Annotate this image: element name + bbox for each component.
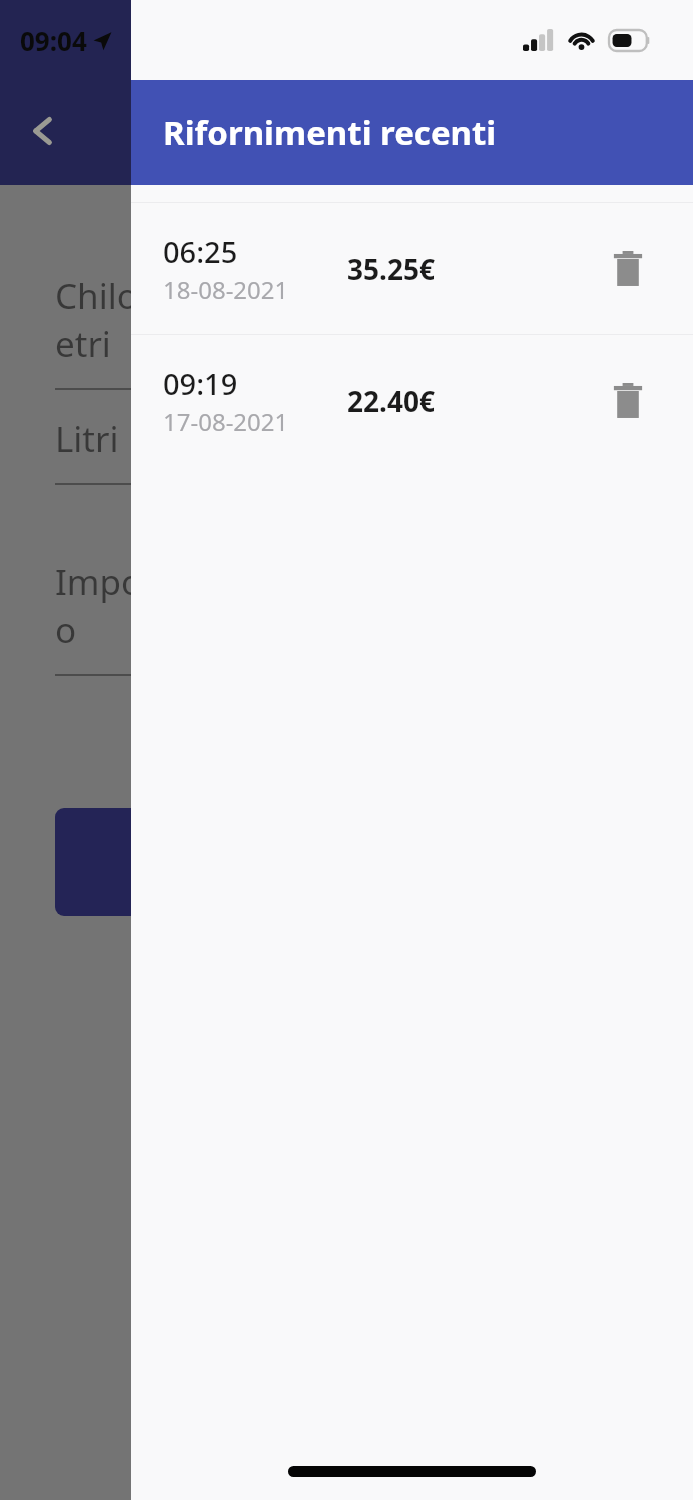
button[interactable]: Delete xyxy=(599,372,657,430)
button[interactable]: Back xyxy=(16,104,70,158)
staticText: 09:19 xyxy=(163,364,238,403)
button[interactable]: 09:19 xyxy=(131,335,693,466)
button[interactable]: Delete xyxy=(599,240,657,298)
staticText: 35.25€ xyxy=(347,250,435,288)
staticText: 17-08-2021 xyxy=(163,405,289,438)
staticText: 09:04 xyxy=(20,23,87,58)
staticText: Chilometri xyxy=(55,272,186,368)
staticText: 06:25 xyxy=(163,232,238,271)
staticText: 22.40€ xyxy=(347,382,435,420)
staticText: Rifornimenti recenti xyxy=(163,110,497,155)
staticText: 18-08-2021 xyxy=(163,273,289,306)
button[interactable]: 06:25 xyxy=(131,203,693,334)
button[interactable] xyxy=(55,808,175,916)
staticText: Litri xyxy=(55,415,119,463)
staticText: Importo xyxy=(55,558,186,654)
